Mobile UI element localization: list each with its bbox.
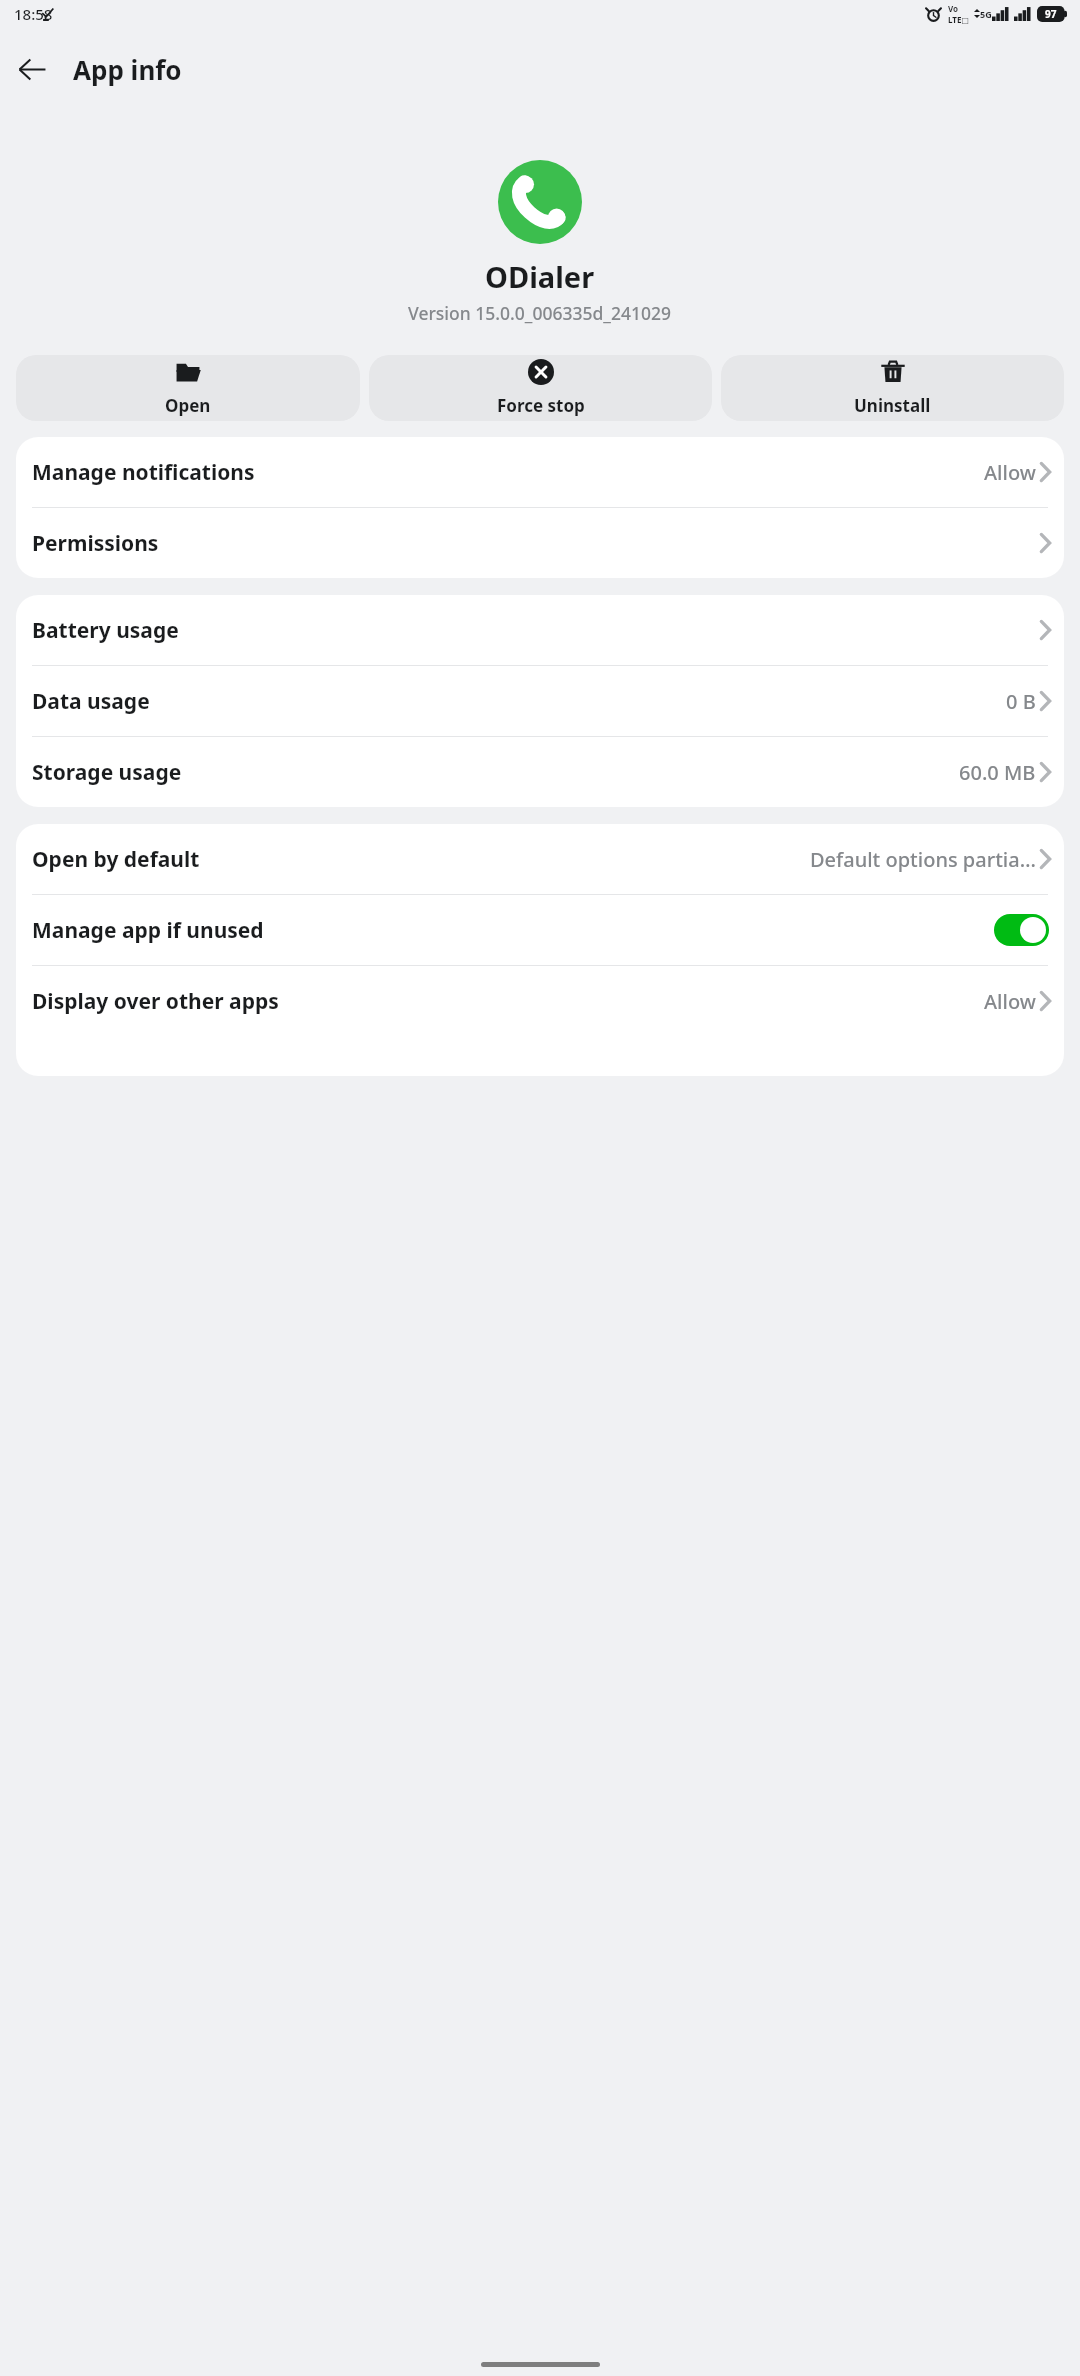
staticText: Version 15.0.0_006335d_241029 xyxy=(408,301,672,325)
button[interactable]: Battery usage xyxy=(16,595,1064,665)
button[interactable]: Data usage xyxy=(16,666,1064,736)
staticText: Open by default xyxy=(32,845,200,874)
button[interactable]: Manage notifications xyxy=(16,437,1064,507)
staticText: 5G xyxy=(980,8,992,20)
button[interactable]: Manage app if unused xyxy=(994,914,1049,946)
staticText: App info xyxy=(73,52,182,87)
button[interactable]: Open xyxy=(16,355,360,421)
staticText: Display over other apps xyxy=(32,987,279,1016)
staticText: Storage usage xyxy=(32,758,182,787)
button[interactable]: Storage usage xyxy=(16,737,1064,807)
staticText: Allow xyxy=(984,988,1036,1015)
staticText: 60.0 MB xyxy=(959,759,1036,786)
staticText: LTE□ xyxy=(948,14,969,25)
staticText: Vo xyxy=(948,3,959,14)
staticText: 0 B xyxy=(1006,688,1036,715)
button[interactable]: Force stop xyxy=(369,355,712,421)
staticText: ODialer xyxy=(485,257,595,296)
staticText: Force stop xyxy=(497,394,585,417)
staticText: Manage notifications xyxy=(32,458,255,487)
staticText: Manage app if unused xyxy=(32,916,264,945)
staticText: Battery usage xyxy=(32,616,179,645)
staticText: 18:58 xyxy=(14,4,53,24)
staticText: Permissions xyxy=(32,529,159,558)
staticText: Uninstall xyxy=(854,394,931,417)
staticText: Default options partia… xyxy=(810,846,1036,873)
button[interactable]: Back xyxy=(8,45,56,93)
staticText: Allow xyxy=(984,459,1036,486)
staticText: 97 xyxy=(1045,7,1057,21)
button[interactable]: Manage app if unused xyxy=(16,895,1064,965)
button[interactable]: Permissions xyxy=(16,508,1064,578)
staticText: Open xyxy=(165,394,211,417)
staticText: Data usage xyxy=(32,687,150,716)
button[interactable]: Open by default xyxy=(16,824,1064,894)
button[interactable]: Uninstall xyxy=(721,355,1064,421)
button[interactable]: Display over other apps xyxy=(16,966,1064,1036)
